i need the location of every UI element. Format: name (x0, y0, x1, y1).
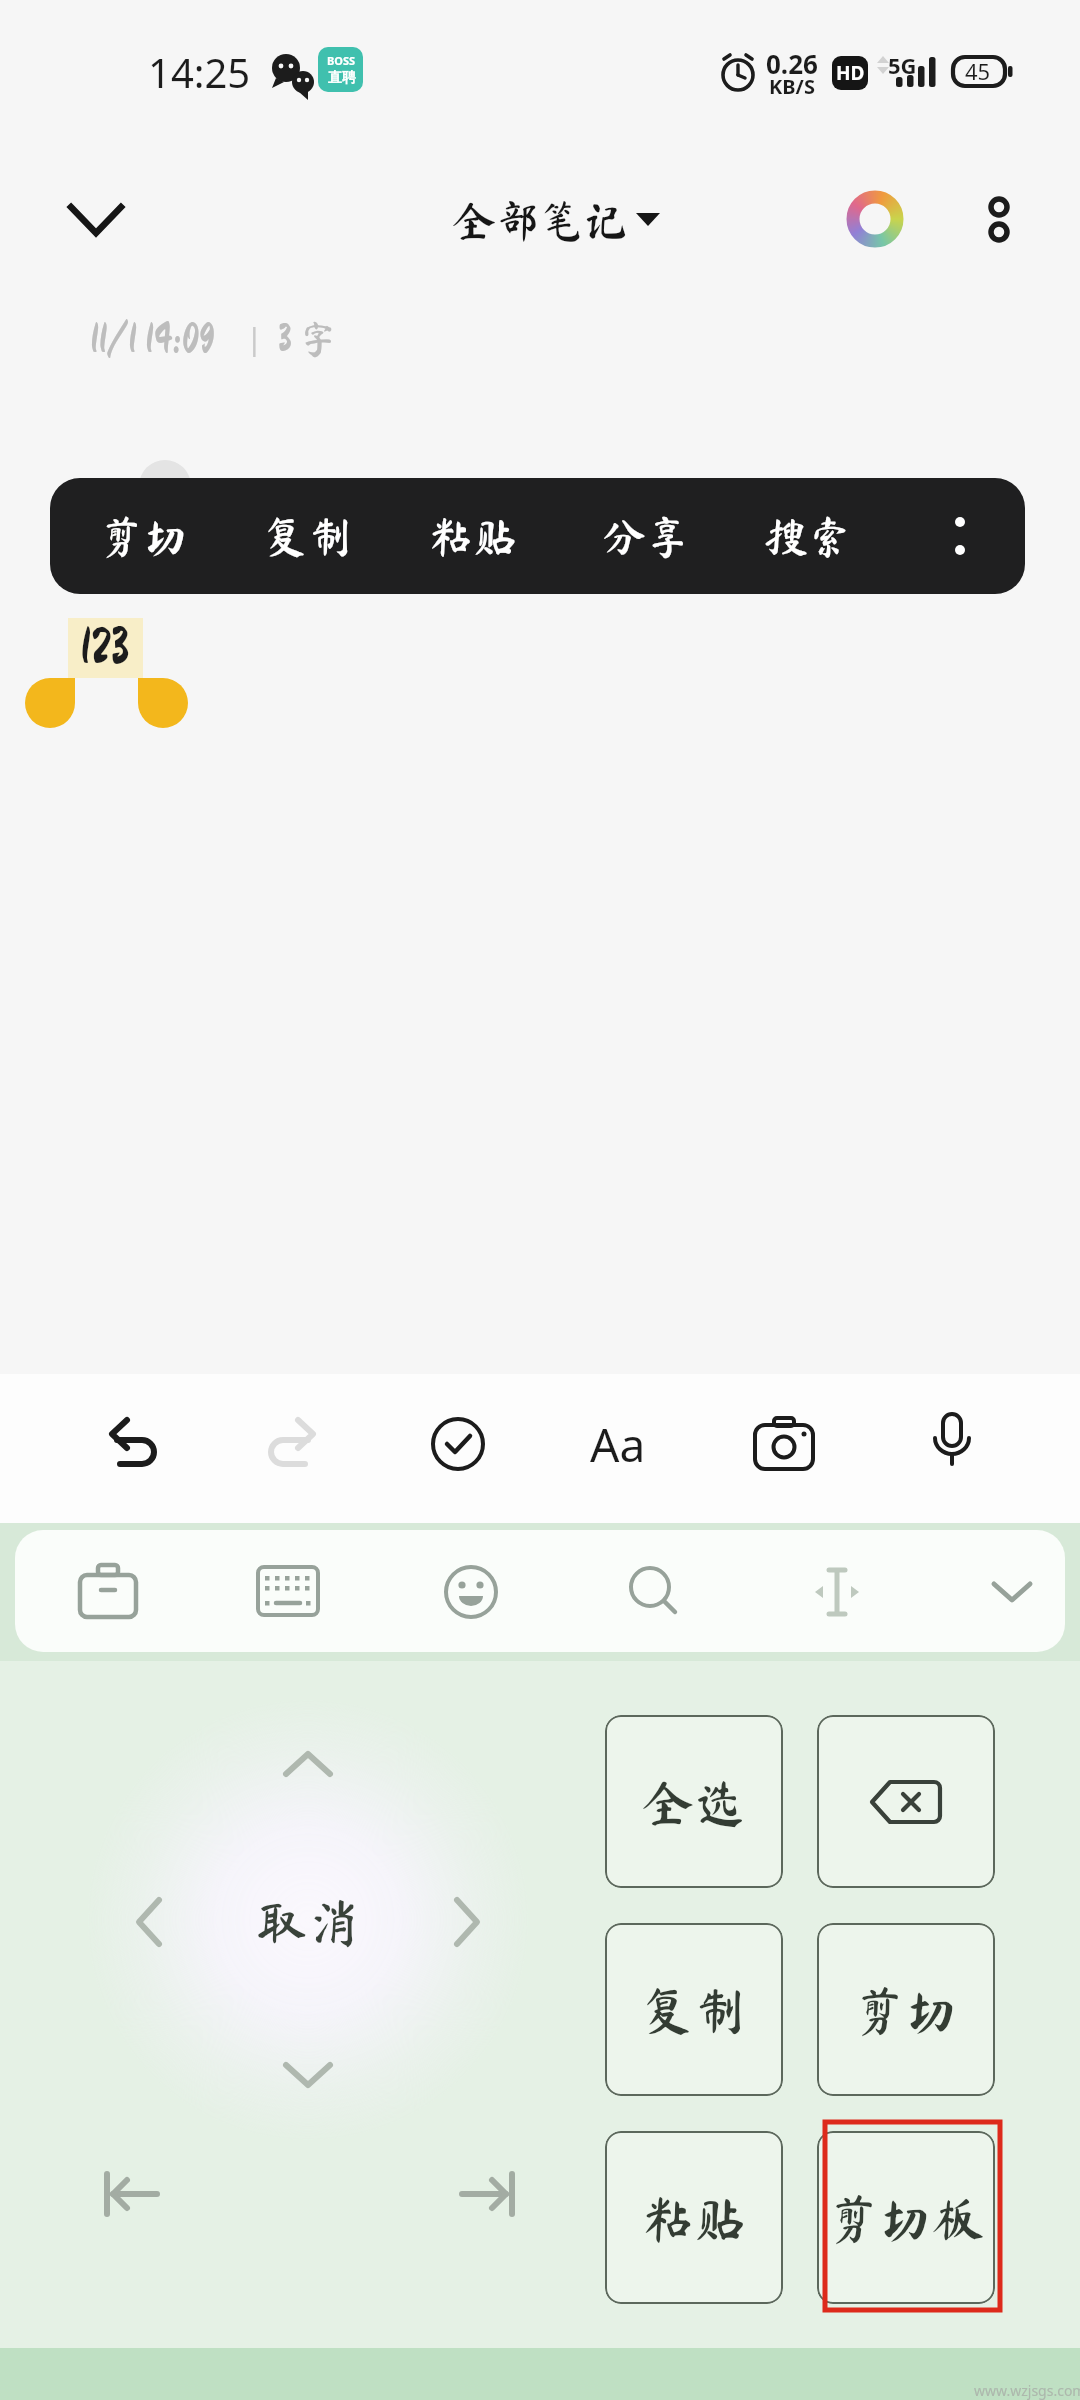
button[interactable] (278, 2055, 338, 2095)
button[interactable] (441, 1562, 501, 1622)
button[interactable] (265, 1408, 329, 1472)
button[interactable] (133, 1892, 173, 1952)
button[interactable]: 复制 (238, 478, 378, 594)
staticText: 11/1 14:09 (90, 318, 215, 360)
staticText: HD (836, 60, 865, 86)
button[interactable]: 粘贴 (403, 478, 543, 594)
button[interactable] (454, 2166, 520, 2226)
staticText: 全选 (642, 1776, 747, 1828)
staticText: www.wzjsgs.com (974, 2381, 1080, 2400)
staticText: 123 (80, 621, 130, 673)
button[interactable] (817, 1715, 995, 1888)
button[interactable]: 全选 (605, 1715, 783, 1888)
button[interactable] (96, 1408, 160, 1472)
staticText: 0.26 (766, 46, 818, 78)
button[interactable] (278, 1748, 338, 1788)
button[interactable] (76, 1559, 140, 1623)
button[interactable]: 全部笔记 (360, 185, 720, 255)
button[interactable]: 剪切 (817, 1923, 995, 2096)
staticText: 全部笔记 (452, 198, 628, 242)
staticText: BOSS (327, 53, 356, 68)
button[interactable] (625, 1562, 685, 1622)
button[interactable] (807, 1564, 867, 1620)
button[interactable]: 剪切板 (817, 2131, 995, 2304)
staticText: KB/S (769, 73, 815, 99)
button[interactable] (428, 1414, 488, 1474)
button[interactable] (922, 1410, 982, 1478)
staticText: 剪切 (854, 1984, 959, 2036)
staticText: 复制 (642, 1984, 747, 2036)
button[interactable] (99, 2166, 165, 2226)
button[interactable] (256, 1563, 320, 1619)
staticText: 粘贴 (642, 2192, 747, 2244)
staticText: 45 (965, 56, 991, 86)
staticText: 直聘 (328, 69, 356, 87)
button[interactable] (975, 190, 1023, 250)
staticText: 5G (888, 50, 917, 80)
staticText: 复制 (264, 514, 352, 558)
staticText: 14:25 (148, 45, 251, 99)
button[interactable] (846, 190, 904, 248)
button[interactable]: 剪切 (74, 478, 214, 594)
staticText: 剪切 (100, 514, 188, 558)
button[interactable]: 分享 (576, 478, 716, 594)
staticText: | (246, 318, 263, 359)
button[interactable]: 搜索 (738, 478, 878, 594)
button[interactable]: 取消 (198, 1877, 418, 1967)
staticText: 取消 (256, 1896, 361, 1948)
button[interactable] (940, 478, 980, 594)
staticText: 粘贴 (429, 514, 517, 558)
button[interactable]: Aa (558, 1409, 678, 1479)
button[interactable]: 粘贴 (605, 2131, 783, 2304)
button[interactable] (443, 1892, 483, 1952)
staticText: 剪切板 (828, 2192, 985, 2244)
button[interactable] (752, 1414, 816, 1474)
staticText: 3 字 (278, 320, 338, 358)
button[interactable] (980, 1570, 1044, 1614)
button[interactable] (58, 190, 134, 252)
staticText: 搜索 (764, 514, 852, 558)
staticText: 分享 (602, 514, 690, 558)
staticText: Aa (590, 1413, 646, 1476)
button[interactable]: 复制 (605, 1923, 783, 2096)
